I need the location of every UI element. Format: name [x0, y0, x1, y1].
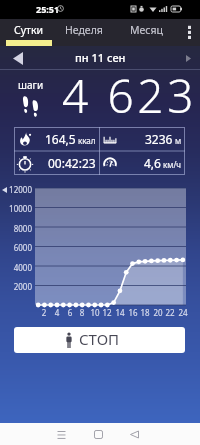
button[interactable]: Back: [123, 423, 146, 445]
staticText: 2000: [0, 281, 32, 292]
staticText: 24: [175, 307, 191, 318]
staticText: 164,5: [45, 131, 76, 147]
button[interactable]: Неделя: [59, 19, 109, 46]
button[interactable]: Next day: [181, 51, 195, 65]
staticText: 4000: [0, 262, 32, 273]
staticText: Неделя: [65, 23, 103, 37]
staticText: СТОП: [79, 329, 120, 349]
staticText: ккал: [78, 135, 96, 146]
staticText: 6: [62, 307, 78, 318]
staticText: 12000: [0, 184, 32, 195]
staticText: 3236: [145, 131, 173, 147]
staticText: км/ч: [163, 159, 182, 170]
staticText: 8: [74, 307, 90, 318]
button[interactable]: СТОП: [14, 327, 185, 353]
staticText: м: [175, 135, 182, 146]
button[interactable]: Сутки: [6, 19, 52, 46]
staticText: 00:42:23: [48, 155, 96, 171]
staticText: 4 623: [62, 64, 198, 121]
button[interactable]: More options: [178, 19, 200, 46]
staticText: пн 11 сен: [75, 50, 126, 65]
button[interactable]: 164,5: [14, 127, 99, 151]
staticText: 20: [150, 307, 166, 318]
staticText: 10000: [0, 203, 32, 214]
button[interactable]: Месяц: [122, 19, 170, 46]
button[interactable]: 3236: [99, 127, 185, 151]
staticText: Месяц: [130, 23, 163, 37]
staticText: 22: [162, 307, 178, 318]
staticText: Сутки: [14, 23, 44, 37]
staticText: 25:51: [36, 3, 60, 15]
button[interactable]: 4,6: [99, 151, 185, 175]
button[interactable]: Previous day: [9, 49, 27, 67]
staticText: 18: [137, 307, 153, 318]
staticText: 4: [49, 307, 65, 318]
button[interactable]: Recents: [50, 423, 73, 445]
staticText: шаги: [18, 78, 44, 92]
staticText: 8000: [0, 223, 32, 234]
staticText: 16: [125, 307, 141, 318]
button[interactable]: Home: [87, 423, 110, 445]
staticText: 2: [36, 307, 52, 318]
staticText: 10: [87, 307, 103, 318]
staticText: 12: [99, 307, 115, 318]
staticText: 14: [112, 307, 128, 318]
staticText: 4,6: [144, 155, 161, 171]
button[interactable]: 00:42:23: [14, 151, 99, 175]
staticText: 6000: [0, 242, 32, 253]
